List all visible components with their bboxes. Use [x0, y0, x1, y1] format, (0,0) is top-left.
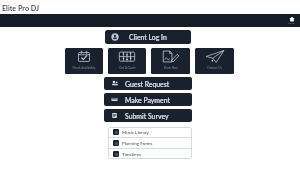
button[interactable]: Guest Request — [104, 77, 192, 90]
staticText: Music Library — [122, 130, 149, 135]
button[interactable]: Contact Us — [195, 48, 234, 74]
button[interactable]: Submit Survey — [104, 109, 192, 122]
button[interactable]: Timelines — [108, 149, 192, 159]
staticText: Elite Pro DJ — [2, 4, 40, 13]
staticText: Planning Forms — [122, 141, 153, 146]
button[interactable]: Make Payment — [104, 93, 192, 106]
staticText: HOME — [288, 22, 295, 25]
staticText: Make Payment — [125, 96, 170, 104]
button[interactable]: Get A Quote — [108, 48, 146, 74]
button[interactable]: Check Availability — [65, 48, 103, 74]
staticText: Guest Request — [125, 80, 170, 88]
staticText: Client Log In — [129, 33, 167, 41]
button[interactable]: Client Log In — [105, 30, 191, 44]
button[interactable]: Book Now — [151, 48, 190, 74]
staticText: Check Availability — [72, 66, 96, 70]
staticText: Contact Us — [207, 66, 222, 70]
staticText: Submit Survey — [125, 112, 169, 120]
staticText: Get A Quote — [119, 66, 136, 70]
staticText: Book Now — [164, 66, 178, 70]
button[interactable]: Music Library — [108, 127, 192, 137]
staticText: Timelines — [122, 152, 141, 157]
button[interactable]: Home — [288, 16, 295, 25]
button[interactable]: Planning Forms — [108, 138, 192, 148]
